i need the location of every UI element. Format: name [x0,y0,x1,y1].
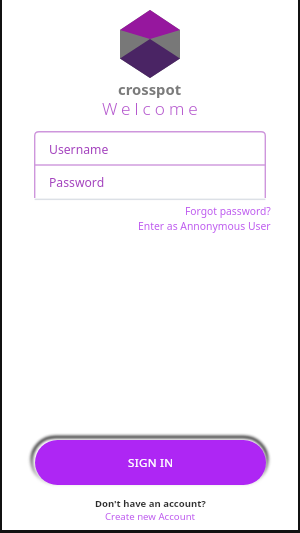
staticText: Enter as Annonymous User [138,219,271,233]
button[interactable]: Enter as Annonymous User [138,219,271,233]
button[interactable]: Forgot password? [185,204,271,218]
button[interactable]: SIGN IN [35,440,266,485]
staticText: crosspot [118,79,182,99]
staticText: Create new Account [105,510,196,523]
staticText: Don't have an account? [95,497,206,510]
staticText: Password [49,174,105,191]
staticText: Forgot password? [185,204,271,218]
staticText: SIGN IN [128,455,174,471]
staticText: Welcome [102,97,202,120]
button[interactable]: Create new Account [105,510,196,523]
button[interactable]: Password [34,165,266,198]
button[interactable]: Username [34,131,266,165]
staticText: Username [49,141,109,158]
